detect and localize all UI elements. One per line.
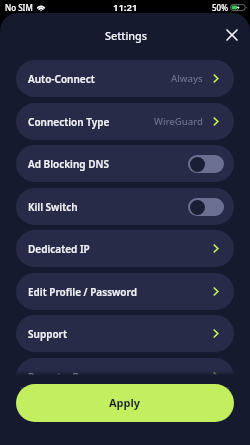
staticText: Settings [105, 28, 148, 43]
staticText: Connection Type [28, 115, 110, 129]
button[interactable]: Ad Blocking DNS toggle [188, 155, 224, 173]
button[interactable]: Apply [16, 384, 234, 422]
button[interactable]: Kill Switch toggle [188, 198, 224, 216]
staticText: No SIM [5, 2, 33, 13]
button[interactable]: Edit Profile / Password [16, 273, 234, 310]
button[interactable]: Auto-Connect [16, 60, 234, 97]
button[interactable]: Ad Blocking DNS [16, 145, 234, 182]
button[interactable]: Report a Bug [16, 358, 234, 395]
button[interactable]: Dedicated IP [16, 230, 234, 267]
staticText: Always [171, 72, 203, 85]
staticText: Report a Bug [28, 370, 92, 384]
staticText: WireGuard [154, 115, 203, 128]
button[interactable]: Support [16, 315, 234, 352]
staticText: Support [28, 327, 67, 341]
staticText: Edit Profile / Password [28, 285, 137, 299]
staticText: Auto-Connect [28, 72, 95, 86]
staticText: Apply [109, 395, 141, 410]
button[interactable]: Close [221, 24, 242, 45]
staticText: Kill Switch [28, 200, 78, 214]
staticText: 11:21 [113, 1, 138, 14]
staticText: Dedicated IP [28, 242, 90, 256]
button[interactable]: Connection Type [16, 103, 234, 140]
button[interactable]: Kill Switch [16, 188, 234, 225]
staticText: Ad Blocking DNS [28, 157, 109, 171]
staticText: 50% [212, 2, 228, 13]
